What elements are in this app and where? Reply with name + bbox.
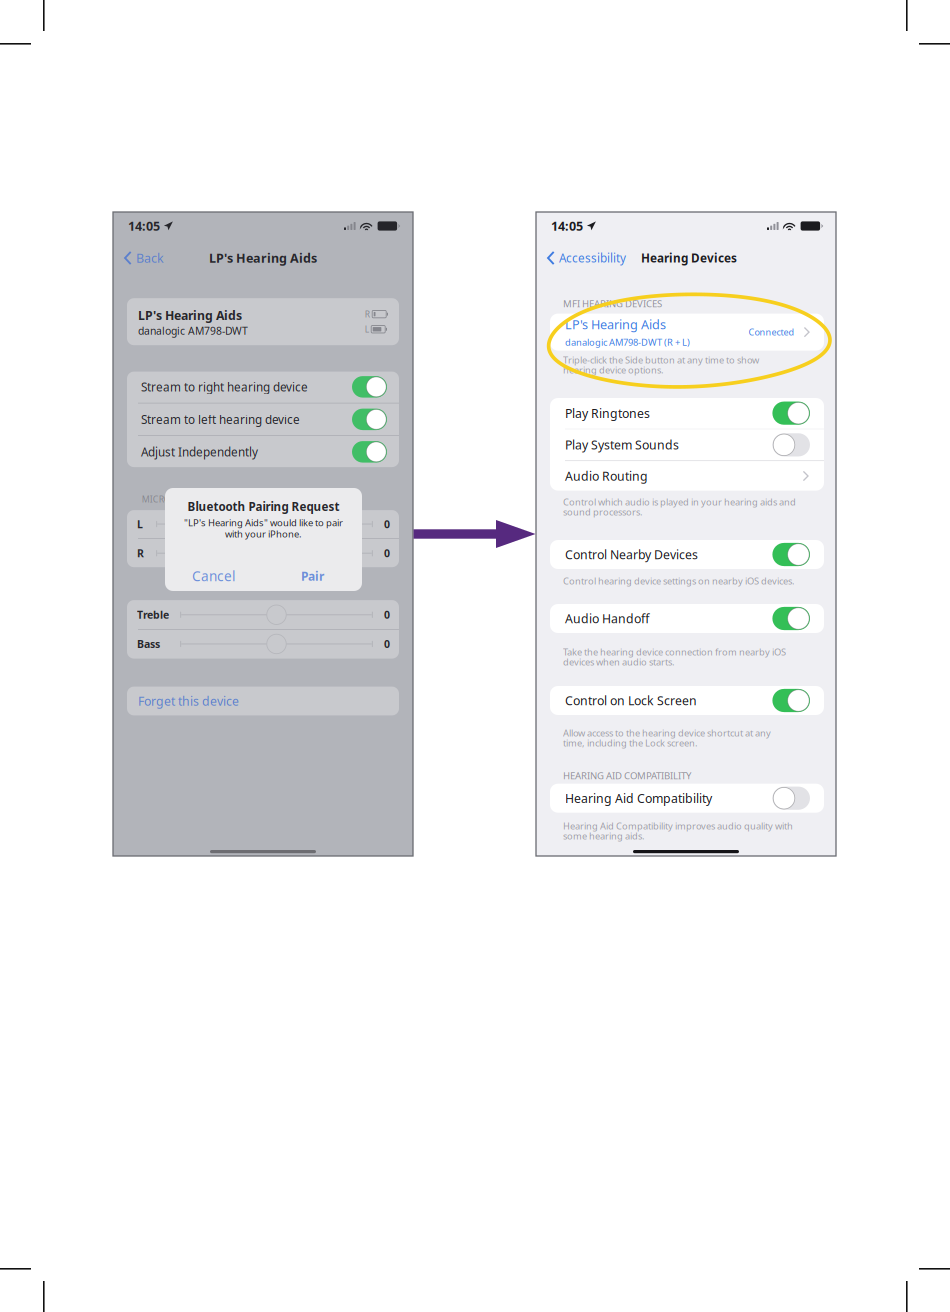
staticText: Play Ringtones — [565, 405, 650, 421]
staticText: Triple-click the Side button at any time… — [563, 354, 759, 366]
button[interactable]: Adjust Independently — [127, 436, 399, 468]
staticText: Hearing Devices — [641, 250, 737, 266]
staticText: L — [137, 517, 143, 531]
staticText: R — [137, 546, 144, 560]
staticText: danalogic AM798-DWT — [138, 324, 248, 338]
staticText: Control hearing device settings on nearb… — [563, 575, 795, 587]
staticText: Hearing Aid Compatibility improves audio… — [563, 820, 793, 832]
button[interactable]: Control on Lock Screen — [550, 686, 824, 715]
button[interactable]: Pair — [263, 561, 362, 591]
staticText: 0 — [384, 637, 390, 651]
staticText: sound processors. — [563, 506, 643, 518]
staticText: Pair — [301, 568, 324, 584]
staticText: 14:05 — [551, 217, 583, 235]
staticText: LP's Hearing Aids — [209, 249, 317, 267]
staticText: HEARING AID COMPATIBILITY — [563, 769, 691, 782]
button[interactable]: Control Nearby Devices — [550, 540, 824, 569]
staticText: Control on Lock Screen — [565, 692, 697, 709]
staticText: Audio Routing — [565, 468, 648, 484]
staticText: Back — [136, 249, 164, 267]
staticText: Hearing Aid Compatibility — [565, 790, 712, 806]
staticText: LP's Hearing Aids — [565, 316, 666, 333]
staticText: time, including the Lock screen. — [563, 737, 698, 749]
staticText: 0 — [384, 517, 390, 531]
button[interactable]: Stream to left hearing device — [127, 403, 399, 435]
button[interactable]: Play Ringtones — [550, 398, 824, 429]
button[interactable]: Back — [113, 245, 174, 271]
staticText: with your iPhone. — [225, 527, 302, 540]
staticText: Stream to right hearing device — [141, 379, 308, 395]
staticText: Play System Sounds — [565, 436, 679, 453]
staticText: some hearing aids. — [563, 830, 645, 842]
staticText: Control which audio is played in your he… — [563, 496, 796, 508]
button[interactable]: Audio Routing — [550, 461, 824, 491]
staticText: R — [365, 308, 370, 320]
staticText: 14:05 — [128, 217, 160, 235]
button[interactable]: LP's Hearing Aids — [550, 314, 824, 351]
staticText: Audio Handoff — [565, 610, 649, 627]
staticText: danalogic AM798-DWT (R + L) — [565, 336, 690, 349]
staticText: Cancel — [192, 567, 236, 585]
staticText: LP's Hearing Aids — [138, 307, 242, 323]
button[interactable]: Accessibility — [536, 245, 636, 271]
button[interactable]: Hearing Aid Compatibility — [550, 784, 824, 813]
button[interactable]: Cancel — [165, 561, 263, 591]
staticText: L — [365, 323, 369, 335]
staticText: MICROPHONE LEVELS — [142, 493, 234, 505]
staticText: 0 — [384, 608, 390, 622]
staticText: devices when audio starts. — [563, 656, 675, 668]
staticText: Bluetooth Pairing Request — [187, 499, 339, 514]
staticText: Take the hearing device connection from … — [563, 646, 786, 658]
button[interactable]: Forget this device — [127, 687, 399, 715]
staticText: "LP's Hearing Aids" would like to pair — [184, 516, 343, 529]
staticText: Treble — [137, 608, 169, 622]
staticText: 0 — [384, 546, 390, 560]
staticText: Forget this device — [138, 693, 239, 709]
staticText: Control Nearby Devices — [565, 546, 698, 563]
staticText: Adjust Independently — [141, 444, 258, 460]
button[interactable]: Play System Sounds — [550, 429, 824, 460]
button[interactable]: Stream to right hearing device — [127, 371, 399, 403]
staticText: Allow access to the hearing device short… — [563, 727, 771, 739]
button[interactable]: Audio Handoff — [550, 604, 824, 633]
staticText: Stream to left hearing device — [141, 411, 300, 427]
staticText: MFI HEARING DEVICES — [563, 297, 662, 310]
staticText: Accessibility — [559, 250, 626, 266]
staticText: hearing device options. — [563, 364, 664, 376]
staticText: Connected — [748, 326, 794, 338]
staticText: Bass — [137, 637, 160, 651]
